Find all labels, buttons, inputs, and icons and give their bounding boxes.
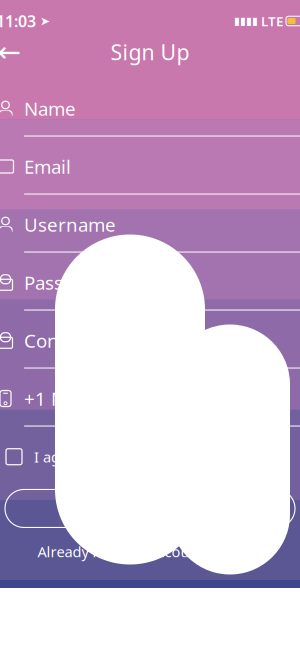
staticText: Name [24, 96, 76, 121]
button[interactable]: Already have an account? [0, 541, 300, 561]
staticText: Sign Up [110, 38, 189, 66]
staticText: Already have an account? [37, 542, 209, 561]
staticText: ➤ [36, 14, 50, 28]
staticText: Username [24, 212, 116, 237]
staticText: +1 Mobile Number [24, 386, 189, 411]
staticText: ← [0, 36, 20, 68]
staticText: LTE [258, 12, 286, 30]
staticText: Email [24, 154, 71, 179]
button[interactable]: Back [0, 35, 26, 69]
staticText: I agree to the [34, 447, 130, 466]
button[interactable]: Sign Up [5, 489, 295, 527]
button[interactable]: I agree to the Terms and Conditions [6, 449, 22, 465]
staticText: Password [24, 270, 107, 295]
staticText: Confirm Password [24, 328, 183, 353]
staticText: ▮▮▮▮ [234, 15, 258, 27]
staticText: 11:03 [0, 10, 36, 32]
